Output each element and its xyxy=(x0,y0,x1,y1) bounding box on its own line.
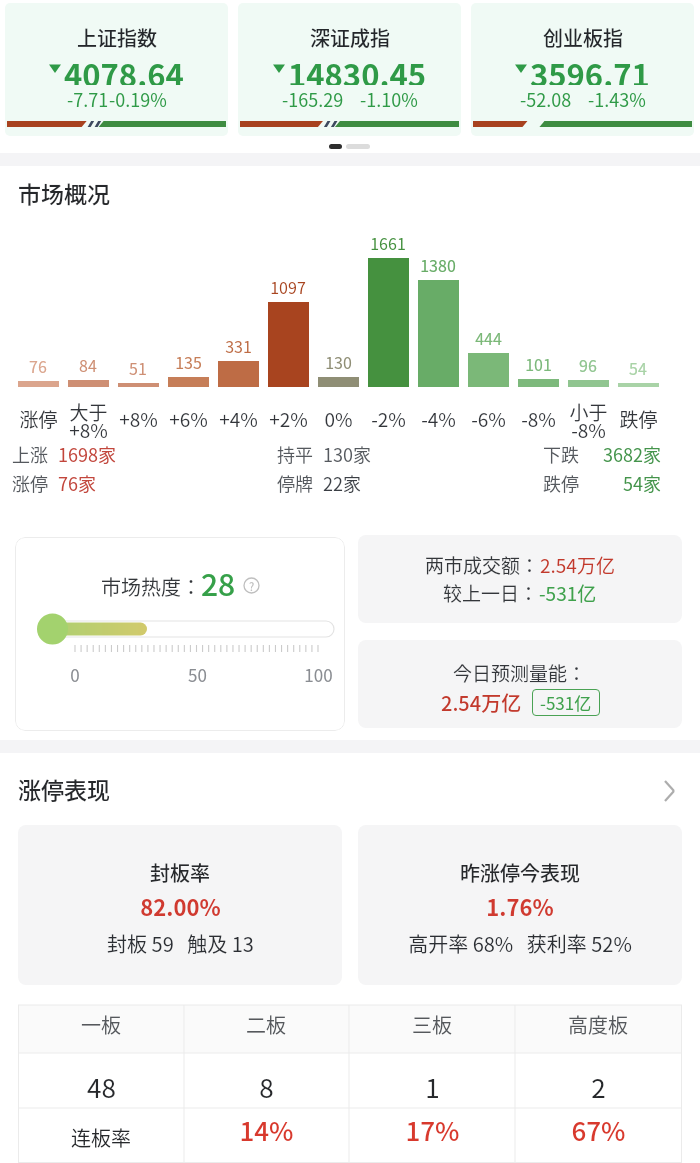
staticText: 昨涨停今表现 xyxy=(460,858,580,887)
staticText: -8% xyxy=(521,405,556,433)
staticText: 跌停 xyxy=(619,405,658,433)
staticText: 两市成交额： xyxy=(425,551,540,579)
staticText: 14830.45 xyxy=(288,51,427,85)
staticText: 67% xyxy=(571,1111,626,1149)
button[interactable] xyxy=(15,537,345,731)
staticText: 1661 xyxy=(370,231,406,254)
staticText: 1.76% xyxy=(486,890,554,922)
staticText: -531亿 xyxy=(540,690,592,715)
staticText: 8 xyxy=(259,1068,274,1106)
staticText: -0.19% xyxy=(109,86,167,112)
staticText: 2 xyxy=(591,1068,606,1106)
staticText: -1.10% xyxy=(360,86,418,112)
staticText: 停牌 xyxy=(277,470,313,496)
staticText: 高度板 xyxy=(568,1010,628,1039)
staticText: 2.54万亿 xyxy=(540,551,615,579)
button[interactable]: 创业板指 xyxy=(471,3,694,136)
staticText: -2% xyxy=(371,405,406,433)
staticText: 48 xyxy=(87,1068,116,1106)
staticText: -165.29 xyxy=(282,86,344,112)
staticText: 1 xyxy=(425,1068,440,1106)
staticText: +4% xyxy=(219,405,258,433)
staticText: 54家 xyxy=(623,470,661,496)
button[interactable]: 上证指数 xyxy=(5,3,228,136)
staticText: -531亿 xyxy=(539,579,597,607)
staticText: 4078.64 xyxy=(64,51,184,85)
staticText: 28 xyxy=(201,561,236,604)
staticText: 76 xyxy=(29,354,47,377)
staticText: 上涨 xyxy=(12,441,48,467)
button[interactable] xyxy=(358,825,682,985)
staticText: 封板 59 触及 13 xyxy=(107,929,254,958)
staticText: 市场概况 xyxy=(18,176,110,209)
staticText: 连板率 xyxy=(71,1123,131,1152)
button[interactable]: 两市成交额： xyxy=(358,535,682,623)
staticText: 82.00% xyxy=(140,890,221,922)
staticText: 持平 xyxy=(277,441,313,467)
staticText: 高开率 68% 获利率 52% xyxy=(408,929,632,958)
staticText: 深证成指 xyxy=(310,23,390,51)
staticText: 一板 xyxy=(81,1010,121,1039)
staticText: 130 xyxy=(325,350,352,373)
staticText: 1698家 xyxy=(58,441,116,467)
staticText: 0% xyxy=(324,405,353,433)
staticText: 涨停 xyxy=(19,405,58,433)
staticText: 涨停 xyxy=(12,470,48,496)
staticText: ? xyxy=(249,578,255,594)
staticText: 101 xyxy=(525,352,552,375)
staticText: 22家 xyxy=(323,470,361,496)
staticText: 跌停 xyxy=(543,470,579,496)
staticText: 444 xyxy=(475,326,502,349)
staticText: 封板率 xyxy=(150,858,210,887)
staticText: -7.71 xyxy=(67,86,109,112)
staticText: 76家 xyxy=(58,470,96,496)
staticText: +6% xyxy=(169,405,208,433)
staticText: 较上一日： xyxy=(443,579,539,607)
staticText: 二板 xyxy=(246,1010,286,1039)
staticText: 331 xyxy=(225,334,252,357)
staticText: 1380 xyxy=(420,253,456,276)
staticText: 84 xyxy=(79,353,97,376)
staticText: 三板 xyxy=(412,1010,452,1039)
staticText: 0 xyxy=(70,662,80,687)
staticText: +8% xyxy=(119,405,158,433)
staticText: -6% xyxy=(471,405,506,433)
staticText: 96 xyxy=(579,353,597,376)
staticText: 3596.71 xyxy=(530,51,650,85)
staticText: 上证指数 xyxy=(77,23,157,51)
staticText: 135 xyxy=(175,350,202,373)
staticText: 涨停表现 xyxy=(18,772,110,805)
staticText: 今日预测量能： xyxy=(453,659,587,687)
staticText: 市场热度： xyxy=(101,572,201,601)
staticText: 3682家 xyxy=(603,441,661,467)
staticText: 100 xyxy=(304,662,333,687)
staticText: 小于 -8% xyxy=(569,398,608,444)
staticText: 2.54万亿 xyxy=(441,688,522,717)
staticText: 14% xyxy=(239,1111,294,1149)
staticText: 130家 xyxy=(323,441,371,467)
button[interactable] xyxy=(18,825,342,985)
staticText: 50 xyxy=(188,662,207,687)
staticText: +2% xyxy=(269,405,308,433)
staticText: -52.08 xyxy=(520,86,572,112)
staticText: 下跌 xyxy=(543,441,579,467)
button[interactable]: 今日预测量能： xyxy=(358,640,682,728)
staticText: -1.43% xyxy=(588,86,646,112)
button[interactable]: 深证成指 xyxy=(238,3,461,136)
staticText: 17% xyxy=(405,1111,460,1149)
staticText: 大于 +8% xyxy=(69,398,108,444)
staticText: 51 xyxy=(129,356,147,379)
staticText: 创业板指 xyxy=(543,23,623,51)
staticText: -4% xyxy=(421,405,456,433)
staticText: 1097 xyxy=(270,275,306,298)
staticText: 54 xyxy=(629,356,647,379)
